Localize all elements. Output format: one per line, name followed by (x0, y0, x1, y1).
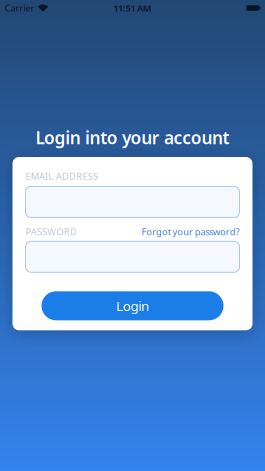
button[interactable]: Password (25, 241, 239, 272)
staticText: Forgot your password? (141, 225, 239, 238)
button[interactable]: Email address (25, 186, 239, 217)
staticText: Login into your account (35, 126, 230, 149)
staticText: PASSWORD (25, 225, 77, 238)
staticText: 11:51 AM (113, 2, 152, 14)
staticText: EMAIL ADDRESS (25, 170, 98, 182)
staticText: Carrier (4, 2, 34, 14)
staticText: Login (116, 297, 149, 315)
button[interactable]: Login (41, 291, 223, 320)
button[interactable]: Forgot your password? (141, 225, 239, 238)
